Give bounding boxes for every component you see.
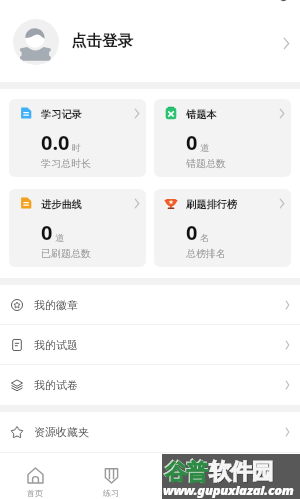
button[interactable]: 进步曲线 xyxy=(9,189,146,267)
button[interactable]: 刷题排行榜 xyxy=(154,189,291,267)
button[interactable]: 我的试卷 xyxy=(0,365,300,405)
button[interactable]: 我的试题 xyxy=(0,325,300,365)
staticText: 谷普 xyxy=(165,459,208,487)
staticText: 错题本 xyxy=(186,108,217,121)
button[interactable]: 学习记录 xyxy=(9,99,146,177)
staticText: 练习 xyxy=(103,488,119,498)
staticText: 刷题排行榜 xyxy=(186,198,237,211)
button[interactable]: 点击登录 xyxy=(0,0,300,82)
staticText: 道 xyxy=(55,232,64,243)
button[interactable]: 首页 xyxy=(0,453,73,499)
staticText: 资源收藏夹 xyxy=(34,425,89,439)
button[interactable]: 课程 xyxy=(150,453,226,499)
button[interactable]: 错题本 xyxy=(154,99,291,177)
staticText: 错题总数 xyxy=(186,157,226,170)
staticText: 首页 xyxy=(27,488,43,498)
staticText: 0.0 xyxy=(41,129,70,156)
staticText: 软件园 xyxy=(210,459,274,487)
staticText: 0 xyxy=(41,219,53,246)
button[interactable]: 练习 xyxy=(73,453,149,499)
staticText: 点击登录 xyxy=(71,31,133,51)
staticText: 我的试卷 xyxy=(34,378,78,392)
staticText: 学习总时长 xyxy=(41,157,91,170)
staticText: 进步曲线 xyxy=(41,198,82,211)
staticText: 学习记录 xyxy=(41,108,82,121)
staticText: 软件园 xyxy=(209,458,273,486)
staticText: 我的徽章 xyxy=(34,298,78,312)
staticText: 0 xyxy=(186,129,198,156)
button[interactable]: 我的徽章 xyxy=(0,285,300,325)
staticText: 时 xyxy=(72,142,81,153)
button[interactable]: 资源收藏夹 xyxy=(0,412,300,452)
staticText: 谷普 xyxy=(164,458,207,486)
staticText: 已刷题总数 xyxy=(41,247,91,260)
button[interactable]: 我的 xyxy=(226,453,300,499)
staticText: 道 xyxy=(200,142,209,153)
staticText: 我的 xyxy=(256,488,272,498)
staticText: 名 xyxy=(200,232,209,243)
staticText: 0 xyxy=(186,219,198,246)
staticText: 我的试题 xyxy=(34,338,78,352)
staticText: 总榜排名 xyxy=(186,247,226,260)
staticText: 课程 xyxy=(180,488,196,498)
staticText: www.gupuxlazai.com xyxy=(163,481,294,499)
